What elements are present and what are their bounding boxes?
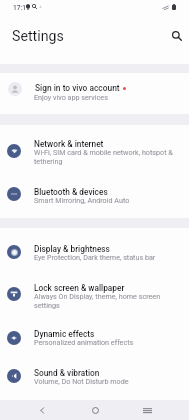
staticText: Settings [12, 28, 64, 45]
button[interactable]: Network & internet [0, 127, 189, 167]
button[interactable]: Search [165, 24, 189, 48]
staticText: Enjoy vivo app services [34, 93, 108, 101]
staticText: Wi-Fi, SIM card & mobile network, hotspo… [34, 148, 173, 166]
staticText: 17:19 [13, 4, 30, 12]
button[interactable]: Sign in to vivo account [0, 73, 189, 114]
staticText: Volume, Do Not Disturb mode [34, 377, 173, 386]
button[interactable]: Recents [137, 400, 157, 420]
staticText: Lock screen & wallpaper [34, 283, 125, 293]
button[interactable]: Bluetooth & devices [0, 175, 189, 215]
button[interactable]: Back [32, 400, 52, 420]
staticText: Always On Display, theme, home screen se… [34, 292, 173, 310]
button[interactable]: Home [85, 400, 105, 420]
button[interactable]: Display & brightness [0, 232, 189, 272]
staticText: Sign in to vivo account [35, 83, 120, 93]
staticText: Eye Protection, Dark theme, status bar [34, 253, 173, 262]
staticText: Personalized animation effects [34, 338, 173, 347]
button[interactable]: Dynamic effects [0, 317, 189, 357]
staticText: Smart Mirroring, Android Auto [34, 196, 173, 205]
staticText: Sound & vibration [34, 368, 100, 378]
button[interactable]: Sound & vibration [0, 356, 189, 396]
staticText: Dynamic effects [34, 329, 95, 339]
button[interactable]: Lock screen & wallpaper [0, 271, 189, 311]
staticText: Network & internet [34, 139, 104, 149]
staticText: Bluetooth & devices [34, 187, 108, 197]
staticText: Display & brightness [34, 244, 110, 254]
